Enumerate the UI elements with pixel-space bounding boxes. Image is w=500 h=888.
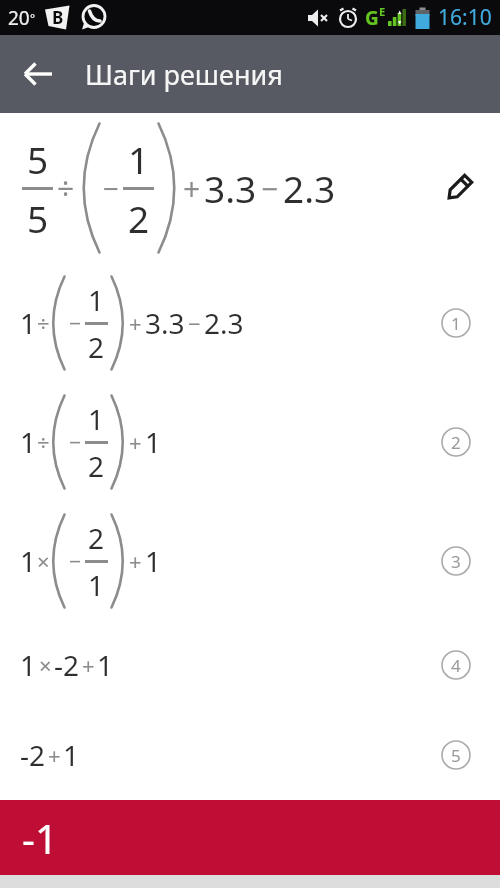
staticText: ° <box>30 10 36 26</box>
button[interactable] <box>0 35 78 113</box>
staticText: E <box>379 4 386 19</box>
staticText: − <box>69 428 82 457</box>
staticText: 2 <box>88 328 105 366</box>
staticText: + <box>48 740 61 770</box>
button[interactable]: -2 <box>0 710 500 800</box>
staticText: − <box>188 308 201 338</box>
staticText: -2 <box>54 646 80 684</box>
staticText: Шаги решения <box>85 56 283 93</box>
staticText: B <box>52 6 64 29</box>
staticText: 1 <box>128 134 150 184</box>
staticText: G <box>365 5 379 31</box>
staticText: 1 <box>88 400 105 438</box>
button[interactable] <box>445 174 473 202</box>
staticText: 3.3 <box>145 304 185 342</box>
staticText: 1 <box>20 423 37 461</box>
staticText: -2 <box>20 736 46 774</box>
staticText: 1 <box>63 736 80 774</box>
staticText: 20 <box>8 5 30 31</box>
staticText: 1 <box>20 542 37 580</box>
staticText: ÷ <box>57 168 75 209</box>
staticText: + <box>129 308 142 338</box>
staticText: -1 <box>22 811 58 865</box>
staticText: 1 <box>97 646 114 684</box>
staticText: − <box>103 169 120 207</box>
staticText: × <box>39 650 52 680</box>
staticText: 5 <box>451 744 461 767</box>
staticText: 2 <box>128 193 150 243</box>
staticText: 1 <box>20 646 37 684</box>
staticText: 5 <box>27 193 49 243</box>
staticText: 1 <box>88 281 105 319</box>
staticText: − <box>261 168 279 209</box>
button[interactable]: -1 <box>0 800 500 875</box>
staticText: ÷ <box>37 427 50 457</box>
button[interactable]: 1 <box>0 382 500 501</box>
staticText: − <box>69 309 82 338</box>
staticText: + <box>183 168 201 209</box>
button[interactable]: 1 <box>0 501 500 620</box>
staticText: × <box>37 546 50 576</box>
staticText: + <box>129 427 142 457</box>
staticText: 2.3 <box>204 304 244 342</box>
button[interactable]: 5 <box>0 113 500 263</box>
staticText: 2 <box>88 519 105 557</box>
staticText: 16:10 <box>438 3 492 32</box>
staticText: 2 <box>88 447 105 485</box>
staticText: 1 <box>145 542 162 580</box>
staticText: 1 <box>88 566 105 604</box>
staticText: 2 <box>451 431 461 454</box>
staticText: 1 <box>451 312 461 335</box>
staticText: + <box>129 546 142 576</box>
staticText: 5 <box>27 134 49 184</box>
staticText: 3 <box>451 550 461 573</box>
staticText: 1 <box>20 304 37 342</box>
staticText: 3.3 <box>204 163 257 213</box>
staticText: 1 <box>145 423 162 461</box>
staticText: 4 <box>451 654 461 677</box>
button[interactable]: 1 <box>0 263 500 382</box>
button[interactable]: 1 <box>0 620 500 710</box>
staticText: 2.3 <box>283 163 336 213</box>
staticText: − <box>69 547 82 576</box>
staticText: + <box>82 650 95 680</box>
staticText: ÷ <box>37 308 50 338</box>
